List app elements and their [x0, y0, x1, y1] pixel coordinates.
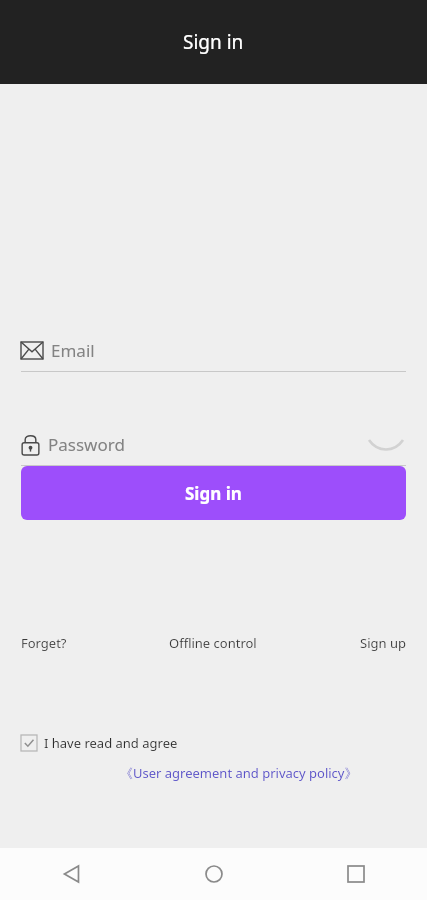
staticText: Offline control [169, 634, 257, 652]
button[interactable]: Recents [285, 848, 427, 900]
button[interactable]: 《User agreement and privacy policy》 [120, 764, 358, 782]
button[interactable]: Password [21, 423, 406, 466]
button[interactable]: Offline control [169, 630, 257, 656]
button[interactable]: Home [143, 848, 285, 900]
staticText: Sign in [185, 482, 242, 505]
staticText: I have read and agree [44, 734, 178, 752]
button[interactable]: Forget? [21, 630, 67, 656]
staticText: Password [48, 433, 125, 456]
button[interactable]: Sign in [21, 466, 406, 520]
staticText: 《User agreement and privacy policy》 [120, 764, 358, 782]
button[interactable]: Show password [366, 425, 406, 465]
staticText: Email [51, 339, 95, 362]
staticText: Forget? [21, 634, 67, 652]
staticText: Sign in [183, 29, 244, 55]
button[interactable]: Email [21, 329, 406, 372]
button[interactable]: Sign up [360, 630, 406, 656]
button[interactable]: Back [0, 848, 143, 900]
staticText: Sign up [360, 634, 406, 652]
button[interactable]: I have read and agree [21, 734, 178, 752]
